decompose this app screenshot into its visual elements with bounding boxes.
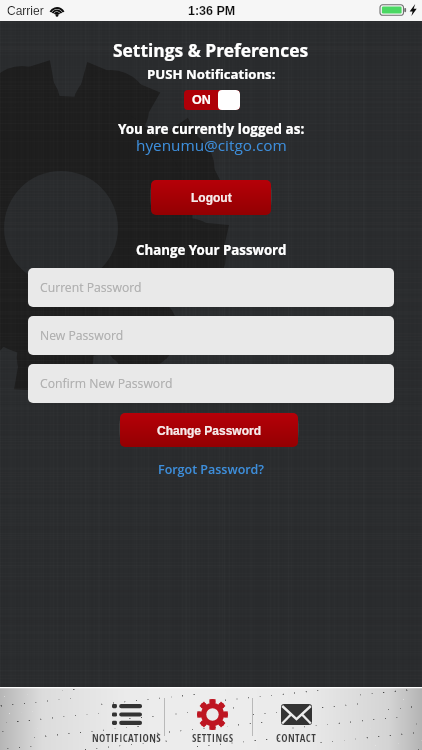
staticText: ON bbox=[192, 93, 211, 107]
other: Contact bbox=[281, 704, 312, 725]
other: Notifications bbox=[112, 704, 142, 725]
button[interactable]: hyenumu@citgo.com bbox=[0, 135, 422, 156]
staticText: SETTINGS bbox=[192, 731, 234, 745]
staticText: Carrier bbox=[7, 4, 44, 17]
button[interactable]: Settings bbox=[172, 687, 253, 745]
button[interactable]: Confirm New Password bbox=[28, 364, 394, 403]
staticText: Change Your Password bbox=[136, 241, 287, 259]
staticText: PUSH Notifications: bbox=[147, 65, 276, 83]
button[interactable]: PUSH notifications on bbox=[184, 90, 240, 110]
staticText: Settings & Preferences bbox=[113, 38, 309, 62]
staticText: You are currently logged as: bbox=[118, 120, 305, 138]
other: Settings bbox=[197, 699, 228, 730]
staticText: Current Password bbox=[40, 279, 142, 296]
button[interactable]: New Password bbox=[28, 316, 394, 355]
staticText: hyenumu@citgo.com bbox=[136, 135, 287, 156]
button[interactable]: Logout bbox=[151, 180, 271, 215]
button[interactable]: Notifications bbox=[86, 687, 167, 745]
staticText: NOTIFICATIONS bbox=[92, 731, 162, 745]
staticText: Forgot Password? bbox=[158, 461, 264, 478]
staticText: New Password bbox=[40, 327, 124, 344]
staticText: Confirm New Password bbox=[40, 375, 173, 392]
button[interactable]: Change Password bbox=[120, 413, 298, 447]
button[interactable]: Forgot Password? bbox=[0, 461, 422, 478]
button[interactable]: Current Password bbox=[28, 268, 394, 307]
staticText: 1:36 PM bbox=[188, 4, 236, 18]
staticText: CONTACT bbox=[276, 731, 317, 745]
staticText: Change Password bbox=[157, 424, 262, 437]
staticText: Logout bbox=[191, 191, 232, 204]
button[interactable]: Contact bbox=[256, 687, 337, 745]
